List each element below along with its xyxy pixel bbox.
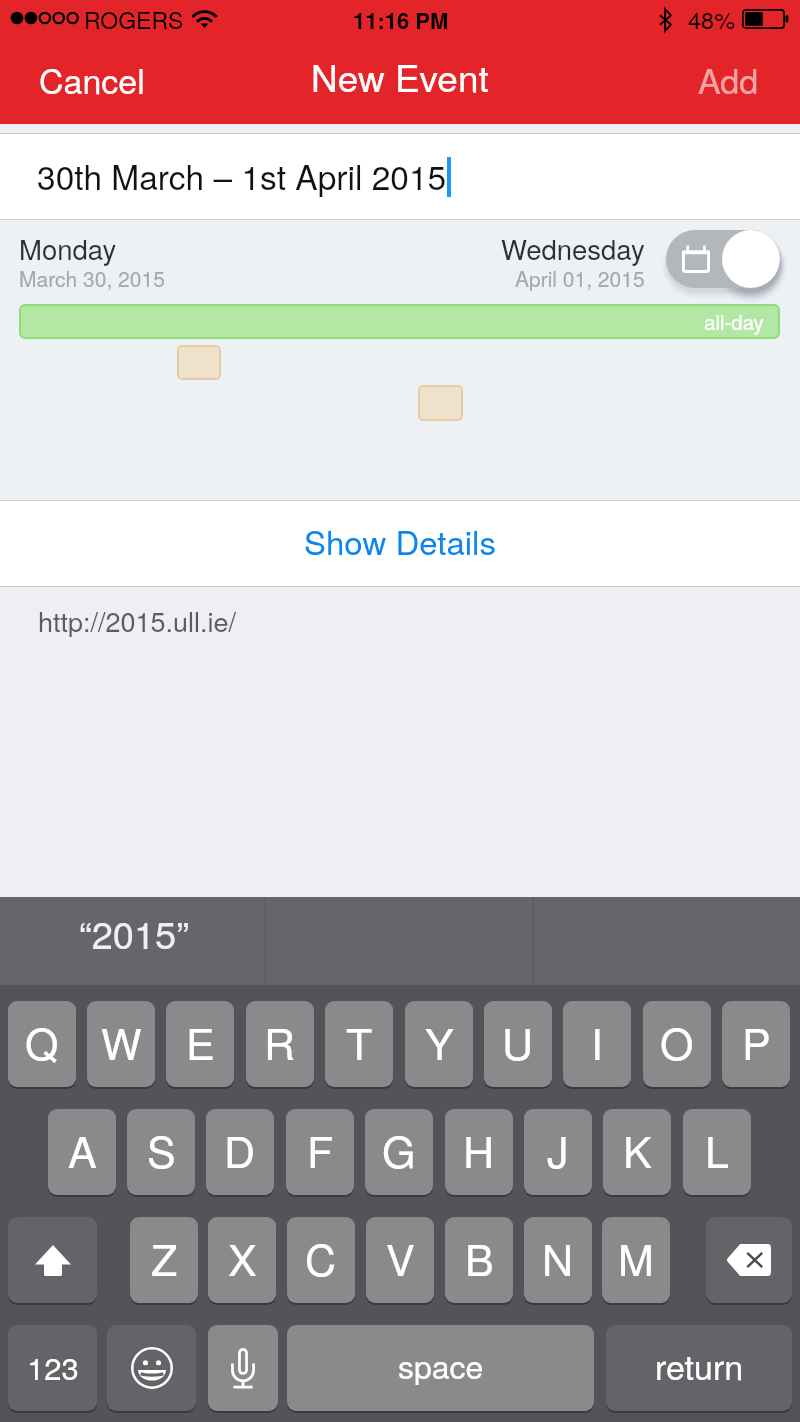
staticText: 11:16 PM <box>353 4 449 36</box>
button[interactable]: L <box>683 1109 751 1195</box>
button[interactable]: F <box>286 1109 354 1195</box>
button[interactable]: Add <box>640 44 800 124</box>
button[interactable]: P <box>722 1001 790 1087</box>
staticText: April 01, 2015 <box>515 263 645 293</box>
button[interactable]: W <box>87 1001 155 1087</box>
staticText: M <box>618 1227 654 1289</box>
button[interactable]: J <box>524 1109 592 1195</box>
staticText: Q <box>25 1011 59 1073</box>
button[interactable]: D <box>206 1109 274 1195</box>
staticText: return <box>655 1341 744 1390</box>
staticText: “2015” <box>79 905 189 959</box>
staticText: G <box>382 1119 416 1181</box>
staticText: T <box>346 1011 373 1073</box>
staticText: 123 <box>27 1344 79 1388</box>
staticText: D <box>224 1119 256 1181</box>
button[interactable]: N <box>524 1217 592 1303</box>
button[interactable]: H <box>445 1109 513 1195</box>
staticText: I <box>591 1011 603 1073</box>
staticText: Z <box>151 1227 178 1289</box>
staticText: L <box>705 1119 729 1181</box>
button[interactable]: Shift <box>8 1217 97 1303</box>
staticText: Monday <box>19 228 117 267</box>
button[interactable]: B <box>445 1217 513 1303</box>
staticText: Wednesday <box>501 228 645 267</box>
button[interactable]: V <box>366 1217 434 1303</box>
staticText: Y <box>425 1011 454 1073</box>
button[interactable]: R <box>246 1001 314 1087</box>
staticText: X <box>228 1227 257 1289</box>
button[interactable]: M <box>602 1217 670 1303</box>
staticText: http://2015.ull.ie/ <box>38 601 237 640</box>
other: Shift <box>35 1245 71 1276</box>
button[interactable]: C <box>287 1217 355 1303</box>
staticText: 30th March – 1st April 2015 <box>37 152 447 200</box>
staticText: J <box>547 1119 569 1181</box>
button[interactable]: return <box>606 1325 792 1411</box>
button[interactable]: Z <box>130 1217 198 1303</box>
staticText: B <box>465 1227 494 1289</box>
button[interactable]: space <box>287 1325 594 1411</box>
staticText: E <box>186 1011 215 1073</box>
staticText: ROGERS <box>84 3 184 36</box>
button[interactable]: Emoji keyboard <box>107 1325 196 1411</box>
staticText: V <box>386 1227 415 1289</box>
staticText: Cancel <box>39 55 145 104</box>
staticText: Show Details <box>304 517 496 564</box>
staticText: W <box>101 1011 142 1073</box>
staticText: R <box>264 1011 296 1073</box>
button[interactable]: Toggle all-day <box>666 230 780 288</box>
button[interactable]: X <box>208 1217 276 1303</box>
button[interactable]: Dictation <box>208 1325 278 1411</box>
other: Emoji keyboard <box>131 1347 173 1389</box>
staticText: K <box>623 1119 652 1181</box>
button[interactable]: G <box>365 1109 433 1195</box>
other: Dictation <box>231 1348 255 1389</box>
staticText: C <box>305 1227 337 1289</box>
staticText: Add <box>698 55 759 104</box>
staticText: March 30, 2015 <box>19 263 165 293</box>
staticText: S <box>147 1119 176 1181</box>
button[interactable]: Y <box>405 1001 473 1087</box>
staticText: O <box>660 1011 694 1073</box>
button[interactable]: Backspace <box>706 1217 792 1303</box>
button[interactable]: S <box>127 1109 195 1195</box>
staticText: P <box>742 1011 771 1073</box>
other: Backspace <box>727 1244 771 1276</box>
button[interactable]: E <box>166 1001 234 1087</box>
staticText: N <box>542 1227 574 1289</box>
button[interactable]: 123 <box>8 1325 97 1411</box>
button[interactable]: O <box>643 1001 711 1087</box>
staticText: New Event <box>311 50 489 103</box>
staticText: A <box>68 1119 97 1181</box>
button[interactable]: Show Details <box>0 501 800 586</box>
staticText: all-day <box>704 306 764 335</box>
staticText: H <box>463 1119 495 1181</box>
button[interactable]: Q <box>8 1001 76 1087</box>
staticText: 48% <box>688 2 736 36</box>
button[interactable]: T <box>325 1001 393 1087</box>
button[interactable]: A <box>48 1109 116 1195</box>
button[interactable]: K <box>603 1109 671 1195</box>
button[interactable]: all-day <box>19 304 780 339</box>
staticText: space <box>398 1342 484 1388</box>
button[interactable]: I <box>563 1001 631 1087</box>
staticText: U <box>502 1011 534 1073</box>
button[interactable]: U <box>484 1001 552 1087</box>
button[interactable]: Cancel <box>22 44 182 124</box>
staticText: F <box>307 1119 334 1181</box>
